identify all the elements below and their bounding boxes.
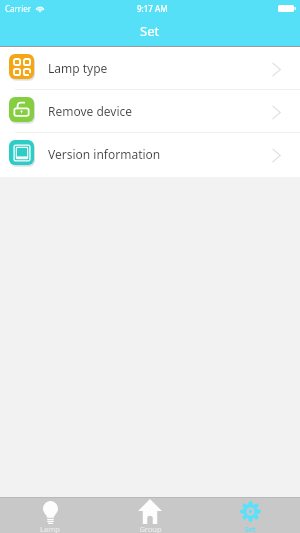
button[interactable]: Remove device	[0, 90, 300, 133]
button[interactable]: Set	[200, 498, 300, 533]
button[interactable]: Version information	[0, 133, 300, 176]
staticText: Group	[139, 524, 162, 533]
button[interactable]: Group	[100, 498, 200, 533]
button[interactable]: Lamp	[0, 498, 100, 533]
staticText: Carrier	[5, 3, 32, 14]
staticText: Version information	[48, 146, 161, 162]
staticText: Set	[140, 22, 160, 40]
staticText: Lamp type	[48, 60, 108, 76]
staticText: Lamp	[40, 524, 60, 533]
staticText: Set	[244, 524, 256, 533]
staticText: Remove device	[48, 103, 133, 119]
button[interactable]: Lamp type	[0, 47, 300, 90]
staticText: 9:17 AM	[137, 3, 168, 14]
